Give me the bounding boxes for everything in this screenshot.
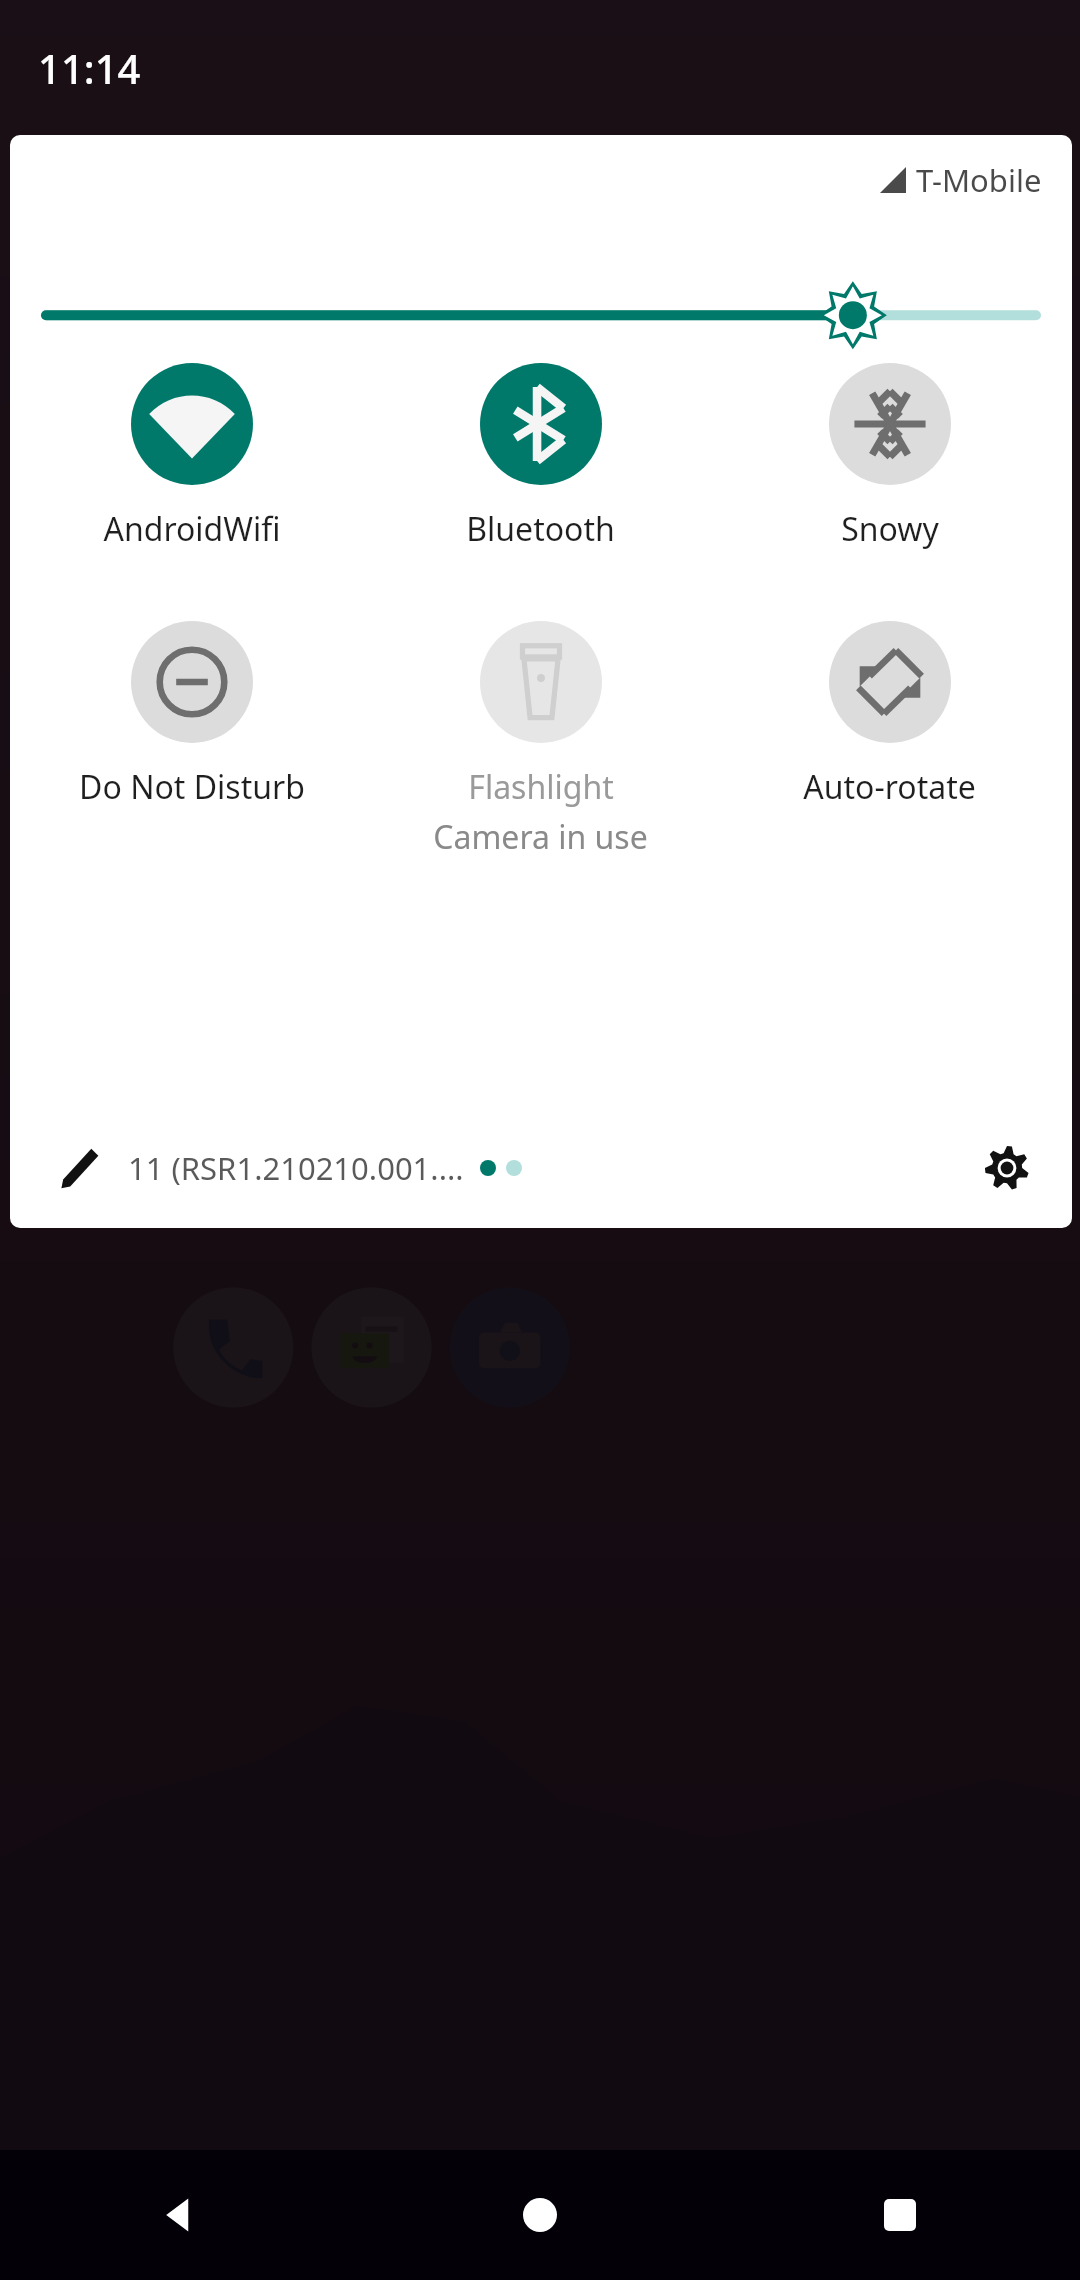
staticText: 11 (RSR1.210210.001.... <box>128 1147 464 1189</box>
button[interactable]: Bluetooth <box>366 357 715 557</box>
staticText: AndroidWifi <box>103 507 281 551</box>
staticText: Flashlight <box>468 765 614 809</box>
button[interactable]: Back <box>0 2150 360 2280</box>
button[interactable]: Home <box>360 2150 720 2280</box>
staticText: Auto-rotate <box>803 765 976 809</box>
button[interactable]: AndroidWifi <box>18 357 366 557</box>
staticText: Bluetooth <box>466 507 615 551</box>
button[interactable]: Auto-rotate <box>715 615 1064 815</box>
button[interactable]: Do Not Disturb <box>18 615 366 815</box>
button[interactable]: Settings <box>970 1131 1044 1205</box>
staticText: 11:14 <box>38 41 141 95</box>
staticText: Snowy <box>841 507 939 551</box>
button[interactable]: Brightness <box>10 225 1072 335</box>
button[interactable]: Flashlight <box>366 615 715 865</box>
staticText: Do Not Disturb <box>79 765 305 809</box>
button[interactable]: Snowy <box>715 357 1064 557</box>
staticText: Camera in use <box>433 815 648 859</box>
button[interactable]: Recent apps <box>720 2150 1080 2280</box>
staticText: T-Mobile <box>916 159 1042 201</box>
button[interactable]: Edit tiles <box>44 1133 114 1203</box>
